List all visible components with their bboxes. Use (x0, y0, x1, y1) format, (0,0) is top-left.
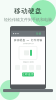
button[interactable]: 立即使用 (22, 72, 34, 76)
staticText: 轻松传输文件到手机和电脑 (4, 17, 52, 22)
staticText: 连接 (35, 32, 41, 35)
staticText: 支持拖拽上传、批量下载 (22, 61, 33, 63)
staticText: 立即使用 (22, 73, 34, 76)
staticText: 移动硬盘 — 文件传输 (13, 38, 42, 42)
staticText: 把文件拖到这里即可上传 (22, 43, 33, 44)
staticText: 移动硬盘 (14, 7, 42, 15)
